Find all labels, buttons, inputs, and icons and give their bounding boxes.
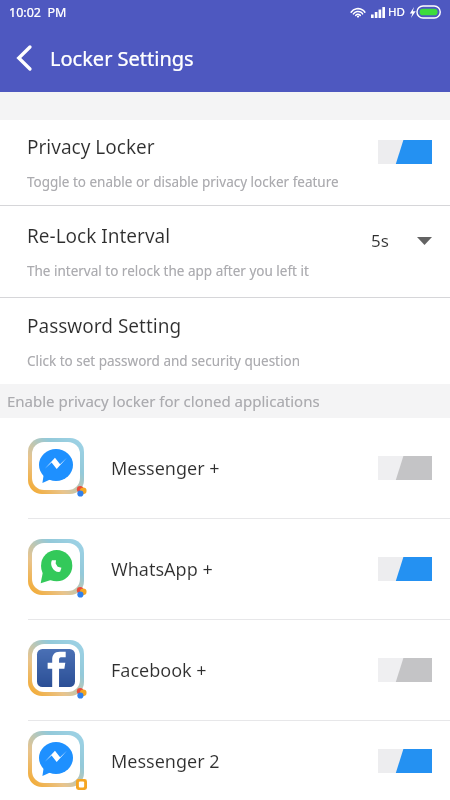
button[interactable]: Messenger 2 bbox=[0, 721, 450, 800]
staticText: WhatsApp + bbox=[111, 557, 213, 582]
button[interactable]: WhatsApp + bbox=[0, 519, 450, 619]
staticText: Privacy Locker bbox=[27, 134, 155, 160]
button[interactable]: Facebook + bbox=[0, 620, 450, 720]
button[interactable]: Password Setting bbox=[0, 298, 450, 384]
staticText: Facebook + bbox=[111, 658, 207, 683]
button[interactable]: Re-Lock Interval bbox=[0, 206, 450, 297]
staticText: Locker Settings bbox=[50, 45, 194, 72]
button[interactable]: Disabled bbox=[378, 658, 432, 682]
staticText: HD bbox=[388, 4, 405, 20]
staticText: Password Setting bbox=[27, 313, 182, 339]
staticText: Enable privacy locker for cloned applica… bbox=[7, 391, 320, 411]
button[interactable]: Disabled bbox=[378, 456, 432, 480]
button[interactable]: Change interval bbox=[417, 236, 432, 245]
button[interactable]: Enabled bbox=[378, 140, 432, 164]
button[interactable]: Back bbox=[0, 34, 48, 82]
button[interactable]: Messenger + bbox=[0, 418, 450, 518]
staticText: Click to set password and security quest… bbox=[27, 352, 300, 370]
staticText: The interval to relock the app after you… bbox=[27, 262, 309, 280]
staticText: Toggle to enable or disable privacy lock… bbox=[27, 173, 339, 191]
staticText: 5s bbox=[371, 229, 389, 252]
button[interactable]: Privacy Locker bbox=[0, 120, 450, 205]
button[interactable]: Enabled bbox=[378, 749, 432, 773]
staticText: Messenger 2 bbox=[111, 749, 220, 774]
staticText: Messenger + bbox=[111, 456, 220, 481]
staticText: 10:02 PM bbox=[9, 4, 67, 21]
staticText: Re-Lock Interval bbox=[27, 223, 171, 249]
button[interactable]: Enabled bbox=[378, 557, 432, 581]
